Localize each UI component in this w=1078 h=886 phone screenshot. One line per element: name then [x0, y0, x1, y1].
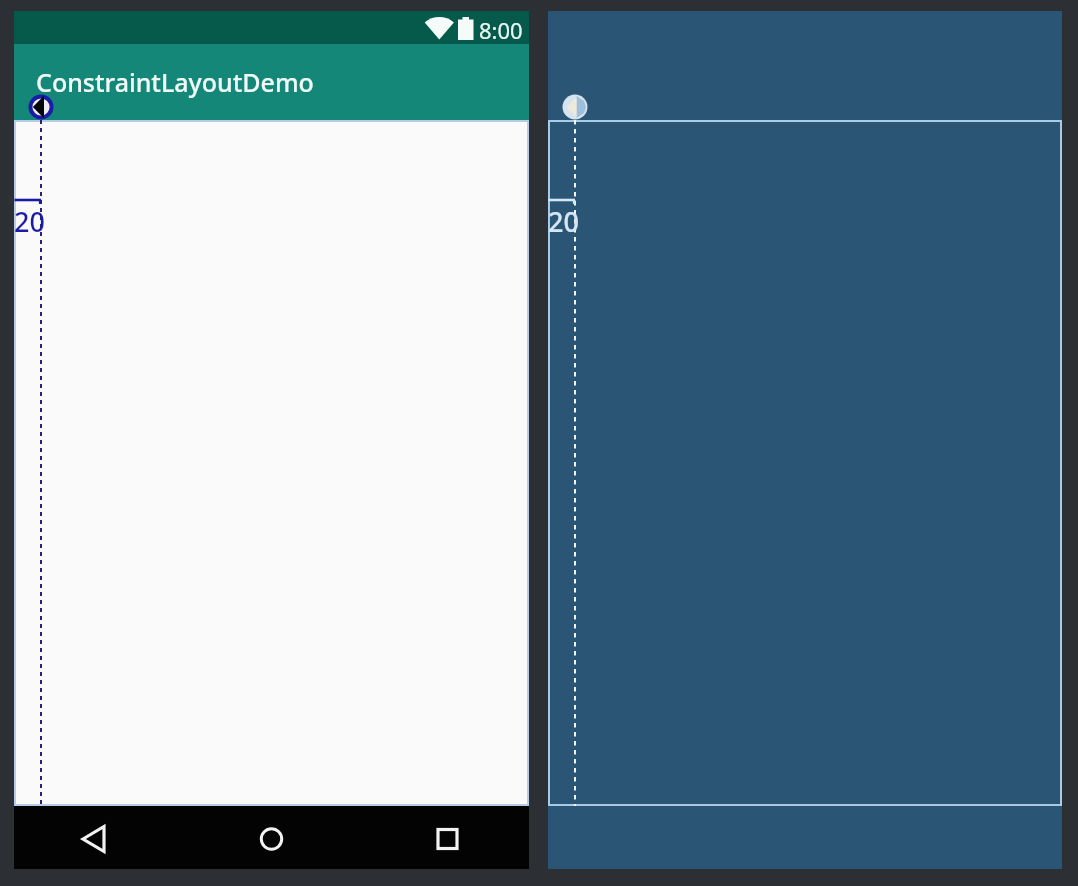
staticText: 20 [14, 203, 45, 240]
button[interactable]: Vertical guideline handle [28, 94, 54, 120]
button[interactable]: ConstraintLayoutDemo [14, 44, 529, 120]
button[interactable]: Home [245, 814, 298, 864]
button[interactable]: Recents [421, 814, 474, 864]
staticText: ConstraintLayoutDemo [36, 65, 314, 99]
button[interactable]: Back [67, 814, 120, 864]
staticText: 20 [548, 203, 579, 240]
button[interactable]: Vertical guideline handle (blueprint) [562, 94, 588, 120]
staticText: 8:00 [479, 15, 523, 45]
